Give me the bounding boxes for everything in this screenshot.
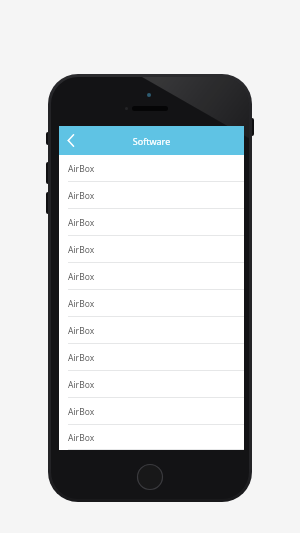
button[interactable]: AirBox: [59, 317, 244, 344]
button[interactable]: AirBox: [59, 290, 244, 317]
button[interactable]: AirBox: [59, 398, 244, 425]
button[interactable]: AirBox: [59, 182, 244, 209]
button[interactable]: Home: [135, 462, 165, 492]
button[interactable]: AirBox: [59, 344, 244, 371]
staticText: Software: [59, 135, 244, 147]
staticText: AirBox: [68, 271, 95, 283]
staticText: AirBox: [68, 298, 95, 310]
staticText: AirBox: [68, 379, 95, 391]
staticText: AirBox: [68, 244, 95, 256]
staticText: AirBox: [68, 432, 95, 444]
staticText: AirBox: [68, 352, 95, 364]
staticText: AirBox: [68, 163, 95, 175]
button[interactable]: AirBox: [59, 263, 244, 290]
staticText: AirBox: [68, 217, 95, 229]
button[interactable]: Back: [59, 126, 83, 155]
staticText: AirBox: [68, 190, 95, 202]
button[interactable]: AirBox: [59, 209, 244, 236]
staticText: AirBox: [68, 325, 95, 337]
staticText: AirBox: [68, 406, 95, 418]
button[interactable]: AirBox: [59, 425, 244, 450]
button[interactable]: AirBox: [59, 236, 244, 263]
button[interactable]: AirBox: [59, 155, 244, 182]
button[interactable]: AirBox: [59, 371, 244, 398]
